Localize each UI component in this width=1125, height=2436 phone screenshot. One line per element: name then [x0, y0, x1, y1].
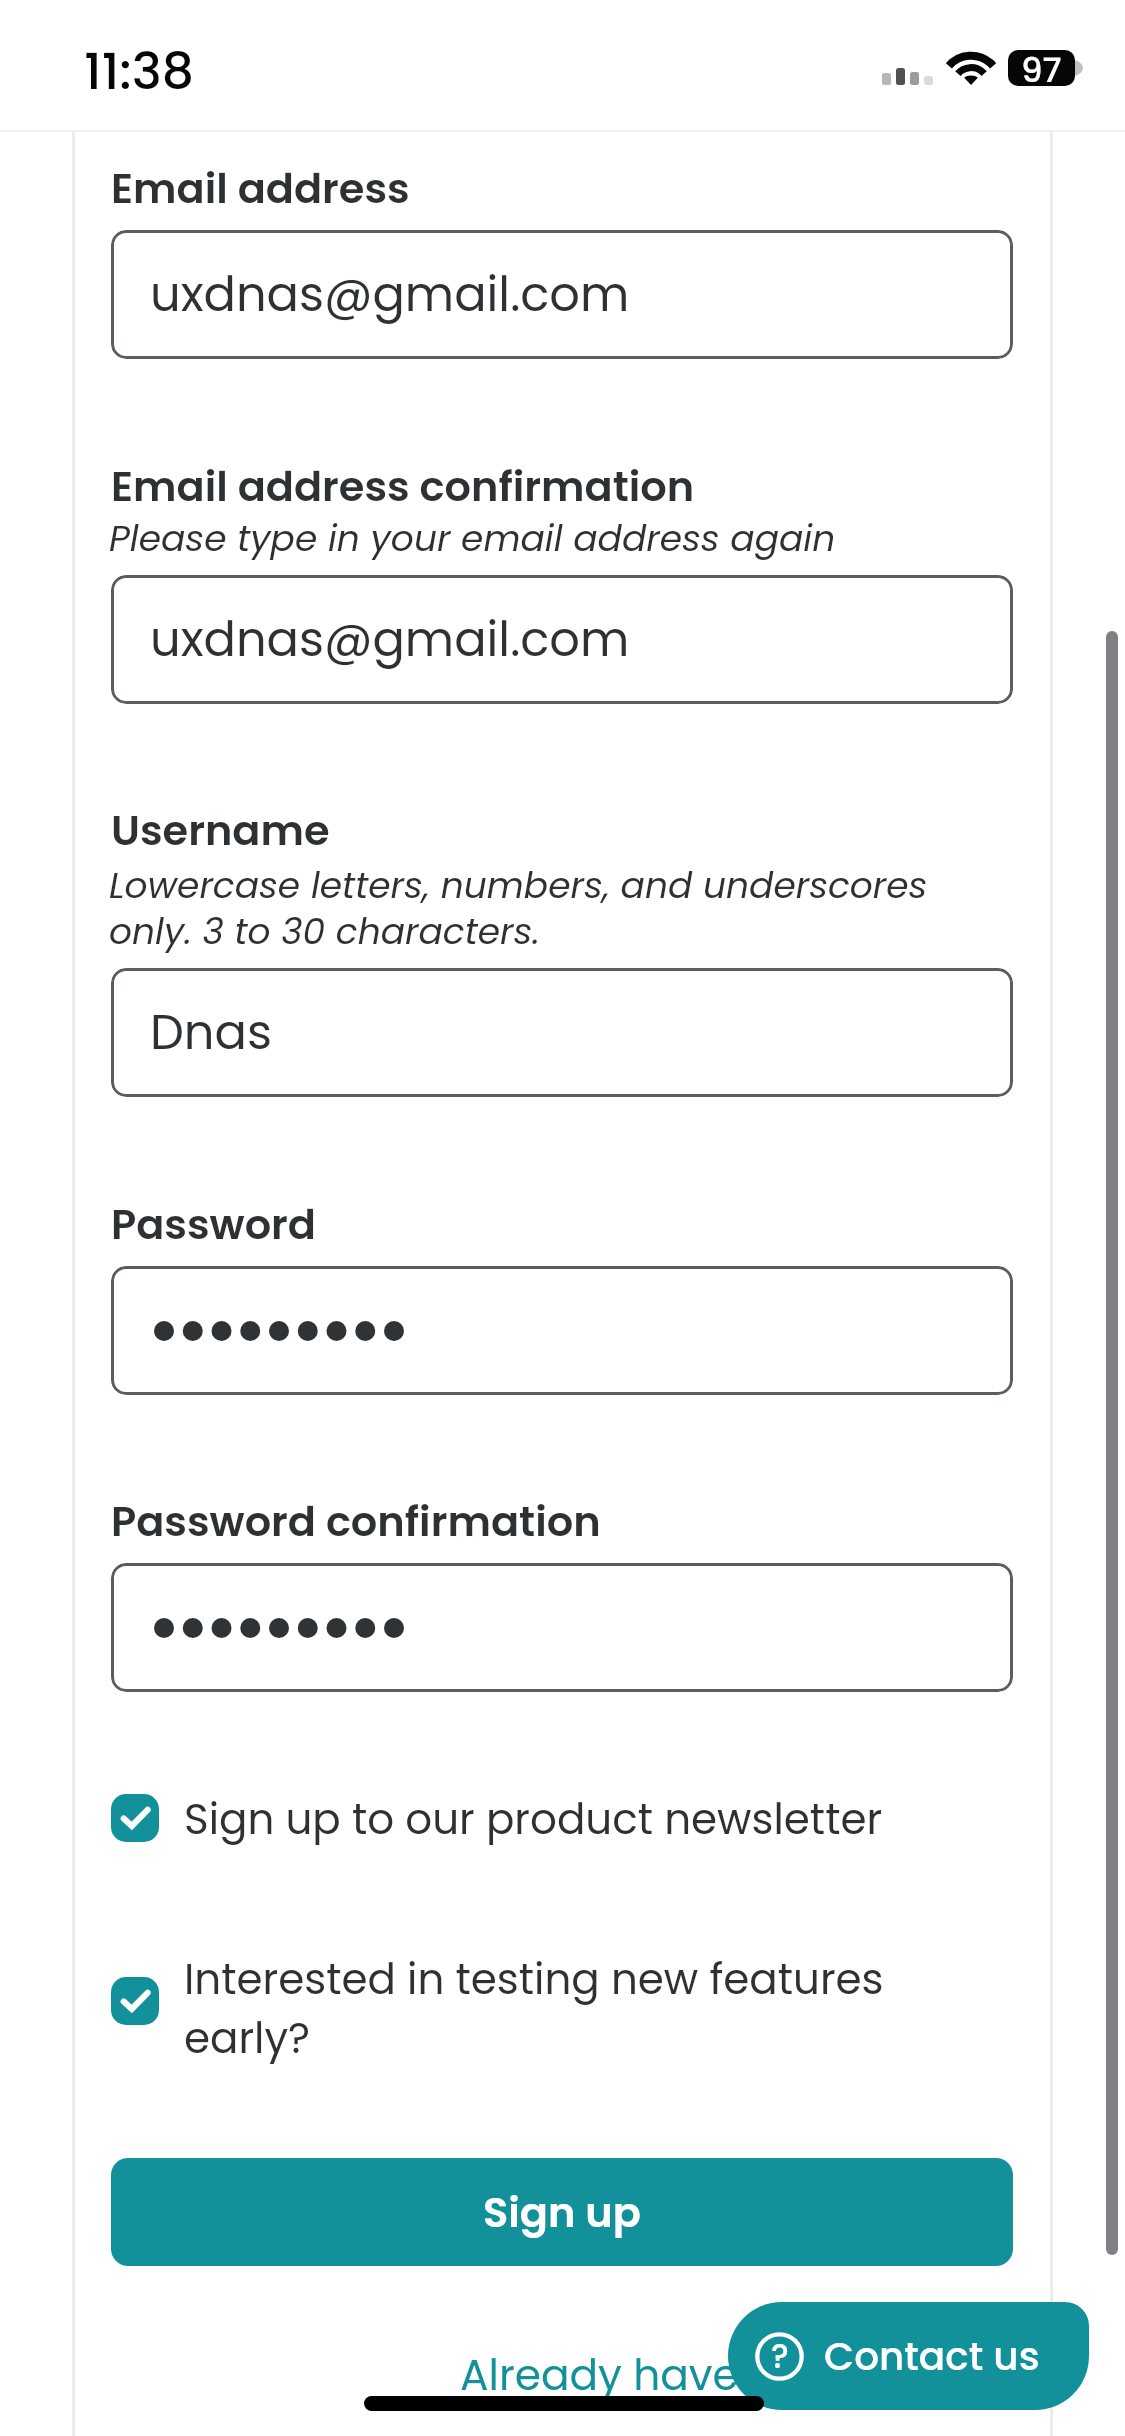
staticText: uxdnas@gmail.com: [150, 606, 630, 673]
button[interactable]: [111, 1782, 1013, 1854]
staticText: Already have an account?: [460, 2346, 1016, 2405]
staticText: Sign up: [483, 2183, 641, 2241]
button[interactable]: uxdnas@gmail.com: [111, 575, 1013, 704]
staticText: Username: [111, 801, 330, 859]
button[interactable]: [111, 1563, 1013, 1692]
staticText: Sign up to our product newsletter: [184, 1790, 883, 1849]
button[interactable]: [111, 1266, 1013, 1395]
other: Checked: Interested in testing new featu…: [111, 1977, 159, 2025]
button[interactable]: Already have an account?: [457, 2344, 1017, 2406]
staticText: Interested in testing new features early…: [184, 1950, 944, 2068]
staticText: Contact us: [824, 2329, 1040, 2384]
button[interactable]: [111, 1944, 1013, 2064]
staticText: Please type in your email address again: [109, 513, 836, 563]
staticText: ?: [771, 2333, 789, 2379]
staticText: Email address confirmation: [111, 457, 695, 515]
staticText: Email address: [111, 159, 410, 217]
staticText: 97: [1021, 50, 1062, 82]
button[interactable]: uxdnas@gmail.com: [111, 230, 1013, 359]
staticText: 11:38: [84, 36, 194, 107]
staticText: uxdnas@gmail.com: [150, 261, 630, 328]
button[interactable]: Sign up: [111, 2158, 1013, 2266]
staticText: Password confirmation: [111, 1492, 601, 1550]
button[interactable]: ?: [728, 2302, 1089, 2410]
staticText: Lowercase letters, numbers, and undersco…: [109, 860, 969, 957]
button[interactable]: Dnas: [111, 968, 1013, 1097]
staticText: Dnas: [150, 999, 272, 1066]
other: Checked: Sign up to our product newslett…: [111, 1794, 159, 1842]
staticText: Password: [111, 1195, 317, 1253]
